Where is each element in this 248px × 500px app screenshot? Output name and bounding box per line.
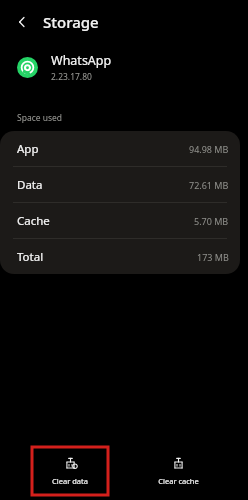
staticText: 5.70 MB [194, 215, 229, 227]
staticText: 72.61 MB [189, 179, 229, 191]
button[interactable]: App [0, 131, 240, 166]
button[interactable]: Clear cache [140, 447, 216, 495]
staticText: Total [17, 249, 44, 265]
staticText: Space used [17, 112, 63, 124]
button[interactable]: WhatsApp [0, 44, 248, 90]
staticText: 173 MB [197, 251, 229, 263]
staticText: Data [17, 177, 43, 193]
staticText: 94.98 MB [189, 143, 229, 155]
staticText: WhatsApp [51, 52, 112, 69]
staticText: Cache [17, 213, 50, 229]
staticText: Clear data [52, 476, 88, 486]
button[interactable]: Total [0, 239, 240, 274]
staticText: Storage [43, 12, 99, 32]
staticText: App [17, 141, 39, 157]
button[interactable]: Clear data [32, 447, 108, 495]
staticText: Clear cache [158, 476, 199, 486]
staticText: 2.23.17.80 [51, 71, 92, 83]
button[interactable]: Back [9, 9, 35, 35]
button[interactable]: Data [0, 167, 240, 202]
button[interactable]: Cache [0, 203, 240, 238]
